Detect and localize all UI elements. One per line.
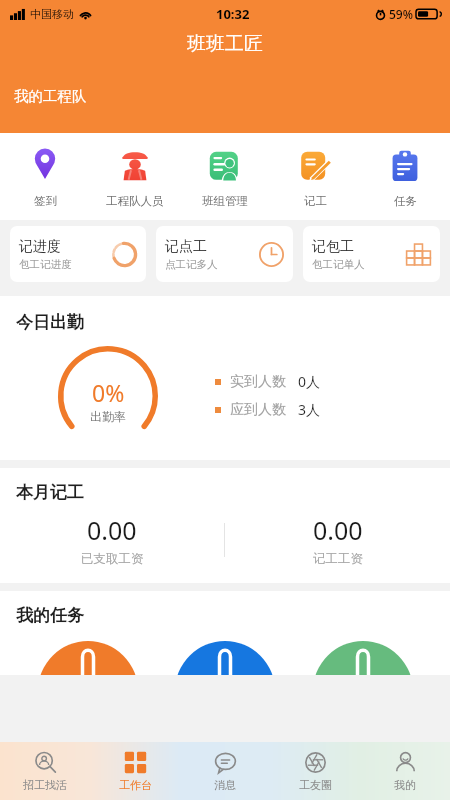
staticText: 消息 <box>214 778 236 792</box>
staticText: 今日出勤 <box>16 312 84 333</box>
button[interactable]: 工友圈 <box>270 742 360 800</box>
button[interactable]: 招工找活 <box>0 742 90 800</box>
button[interactable]: 记进度 <box>10 226 146 282</box>
staticText: 签到 <box>34 194 57 208</box>
staticText: 10:32 <box>216 5 250 23</box>
button[interactable] <box>175 641 275 675</box>
button[interactable]: 任务 <box>360 145 450 210</box>
button[interactable]: 工作台 <box>90 742 180 800</box>
staticText: 应到人数 <box>230 401 286 419</box>
staticText: 0人 <box>298 372 321 391</box>
button[interactable]: 工程队人员 <box>90 145 180 210</box>
button[interactable] <box>313 641 413 675</box>
staticText: 已支取工资 <box>81 551 144 567</box>
button[interactable] <box>38 641 138 675</box>
staticText: 0.00 <box>313 513 363 547</box>
staticText: 点工记多人 <box>165 258 218 271</box>
staticText: 0% <box>92 377 125 408</box>
button[interactable]: 0.00 <box>0 513 224 567</box>
staticText: 记点工 <box>165 238 207 256</box>
button[interactable]: 我的工程队 <box>14 87 87 105</box>
button[interactable]: 消息 <box>180 742 270 800</box>
staticText: 记工工资 <box>313 551 363 567</box>
staticText: 出勤率 <box>90 409 126 424</box>
staticText: 工作台 <box>119 778 152 792</box>
staticText: 记包工 <box>312 238 354 256</box>
staticText: 中国移动 <box>30 7 74 21</box>
button[interactable]: 我的 <box>360 742 450 800</box>
staticText: 任务 <box>394 194 417 208</box>
button[interactable]: 签到 <box>0 145 90 210</box>
staticText: 我的任务 <box>16 605 84 626</box>
button[interactable]: 班组管理 <box>180 145 270 210</box>
staticText: 包工记进度 <box>19 258 72 271</box>
staticText: 我的 <box>394 778 416 792</box>
staticText: 工程队人员 <box>106 194 164 208</box>
button[interactable]: 0.00 <box>225 513 450 567</box>
staticText: 班组管理 <box>202 194 248 208</box>
staticText: 招工找活 <box>23 778 67 792</box>
staticText: 实到人数 <box>230 373 286 391</box>
staticText: 本月记工 <box>16 482 84 503</box>
button[interactable]: 记工 <box>270 145 360 210</box>
staticText: 59% <box>389 6 413 22</box>
staticText: 班班工匠 <box>187 32 263 56</box>
staticText: 记工 <box>304 194 327 208</box>
staticText: 0.00 <box>87 513 137 547</box>
staticText: 3人 <box>298 400 321 419</box>
staticText: 包工记单人 <box>312 258 365 271</box>
button[interactable]: 记包工 <box>303 226 440 282</box>
button[interactable]: 记点工 <box>156 226 293 282</box>
staticText: 记进度 <box>19 238 61 256</box>
staticText: 工友圈 <box>299 778 332 792</box>
